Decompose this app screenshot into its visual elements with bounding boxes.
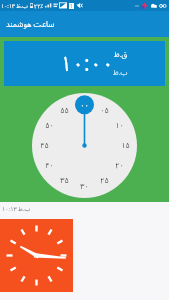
staticText: ۱۰ xyxy=(115,118,124,134)
staticText: ب.ظ xyxy=(113,65,128,80)
staticText: ۳۰ xyxy=(80,179,89,195)
staticText: ۲۵ xyxy=(100,173,109,189)
staticText: ۱۰:۱۳ ب.ظ xyxy=(2,203,31,215)
staticText: ۰۵ xyxy=(100,103,109,119)
button[interactable]: ساعت هوشمند xyxy=(0,11,169,37)
staticText: ۲۲٪ xyxy=(34,0,43,11)
staticText: ۱۰:۰۰ xyxy=(60,42,114,86)
staticText: ساعت هوشمند xyxy=(6,16,55,32)
button[interactable]: ۱۰:۰۰ xyxy=(4,41,165,86)
staticText: ۰۰ xyxy=(80,98,89,114)
staticText: ق.ظ xyxy=(114,47,127,62)
staticText: ۵۰ xyxy=(45,118,54,134)
staticText: ۴۰ xyxy=(45,158,54,174)
staticText: ۵۵ xyxy=(60,103,69,119)
button[interactable]: Analog clock widget xyxy=(0,219,73,292)
staticText: ۳۵ xyxy=(60,173,69,189)
staticText: ۴۵ xyxy=(40,138,49,154)
staticText: ۱۵ xyxy=(121,138,130,154)
staticText: ۲۰ xyxy=(115,158,124,174)
staticText: ب.ظ ۱۰:۱۳ xyxy=(1,0,28,11)
staticText: 1 xyxy=(70,3,73,9)
